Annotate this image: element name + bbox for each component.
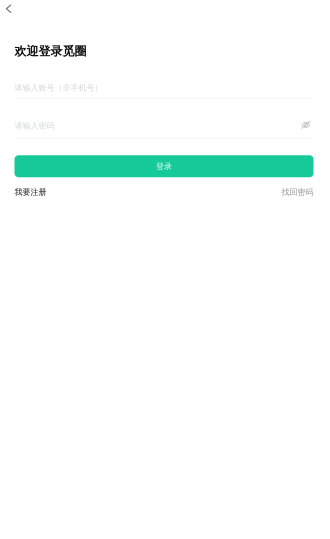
button[interactable]: 找回密码: [281, 187, 313, 197]
staticText: 找回密码: [281, 187, 313, 197]
staticText: 欢迎登录觅圈: [14, 44, 86, 59]
button[interactable]: 我要注册: [14, 187, 46, 197]
button[interactable]: Back: [0, 0, 28, 22]
staticText: 请输入密码: [14, 121, 54, 131]
staticText: 请输入账号（非手机号）: [14, 83, 102, 93]
button[interactable]: 登录: [14, 155, 313, 177]
staticText: 我要注册: [14, 187, 46, 197]
staticText: 登录: [156, 161, 172, 171]
button[interactable]: Show password: [301, 120, 313, 131]
